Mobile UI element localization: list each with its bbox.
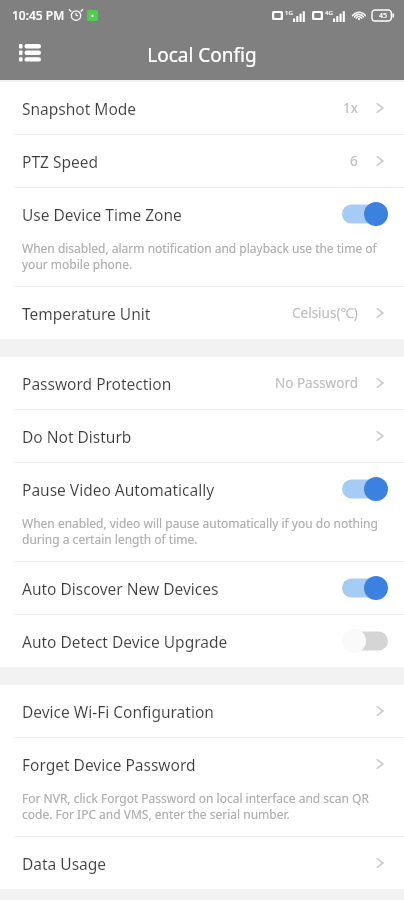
staticText: Temperature Unit: [22, 303, 151, 324]
staticText: No Password: [275, 374, 358, 392]
staticText: Password Protection: [22, 373, 172, 394]
button[interactable]: Data Usage: [0, 837, 404, 889]
staticText: Local Config: [147, 42, 257, 68]
button[interactable]: Auto Discover New Devices: [0, 562, 404, 614]
staticText: 10:45 PM: [12, 7, 65, 23]
button[interactable]: Toggle on: [342, 202, 388, 226]
staticText: Do Not Disturb: [22, 426, 132, 447]
staticText: When disabled, alarm notification and pl…: [22, 240, 380, 273]
button[interactable]: Pause Video Automatically: [0, 463, 404, 561]
staticText: 1x: [343, 99, 358, 117]
staticText: When enabled, video will pause automatic…: [22, 515, 380, 548]
button[interactable]: Temperature Unit: [0, 287, 404, 339]
staticText: Auto Detect Device Upgrade: [22, 631, 228, 652]
button[interactable]: Forget Device Password: [0, 738, 404, 836]
button[interactable]: Toggle on: [342, 576, 388, 600]
staticText: Celsius(℃): [292, 304, 358, 322]
staticText: Device Wi-Fi Configuration: [22, 701, 214, 722]
staticText: Data Usage: [22, 853, 107, 874]
button[interactable]: Password Protection: [0, 357, 404, 409]
staticText: Snapshot Mode: [22, 98, 137, 119]
button[interactable]: Auto Detect Device Upgrade: [0, 615, 404, 667]
staticText: 1G: [285, 9, 293, 17]
button[interactable]: Device Wi-Fi Configuration: [0, 685, 404, 737]
staticText: PTZ Speed: [22, 151, 98, 172]
staticText: Forget Device Password: [22, 754, 196, 775]
staticText: 45: [379, 11, 388, 21]
button[interactable]: Menu: [12, 37, 48, 73]
staticText: 4G: [325, 9, 333, 17]
button[interactable]: Toggle off: [342, 629, 388, 653]
button[interactable]: Use Device Time Zone: [0, 188, 404, 286]
staticText: Use Device Time Zone: [22, 204, 182, 225]
staticText: Auto Discover New Devices: [22, 578, 219, 599]
button[interactable]: Toggle on: [342, 477, 388, 501]
staticText: 6: [350, 152, 358, 170]
button[interactable]: PTZ Speed: [0, 135, 404, 187]
button[interactable]: Snapshot Mode: [0, 82, 404, 134]
button[interactable]: Do Not Disturb: [0, 410, 404, 462]
staticText: •: [91, 10, 95, 21]
staticText: Pause Video Automatically: [22, 479, 215, 500]
staticText: For NVR, click Forgot Password on local …: [22, 790, 378, 823]
